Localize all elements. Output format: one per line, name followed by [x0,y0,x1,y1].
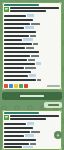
button[interactable]: Reaction 1 [2,110,62,150]
button[interactable]: Reaction 5 [24,84,28,88]
button[interactable]: Reaction 1 [2,2,62,90]
button[interactable] [44,102,62,108]
button[interactable]: Scroll to bottom [54,131,62,139]
button[interactable]: Reaction 2 [9,84,13,88]
button[interactable]: Reaction 4 [19,84,23,88]
button[interactable]: Reaction 3 [14,84,18,88]
button[interactable] [2,92,62,100]
button[interactable]: Reaction 1 [4,84,8,88]
